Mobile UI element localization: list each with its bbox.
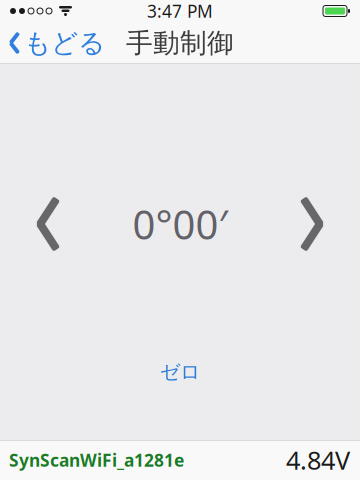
staticText: 4.84V [286,443,350,477]
staticText: ゼロ [160,360,200,384]
staticText: 0°00′ [132,197,227,250]
button[interactable]: もどる [0,22,115,64]
button[interactable]: Decrease [0,176,96,272]
button[interactable]: Increase [264,176,360,272]
staticText: 3:47 PM [147,0,213,22]
staticText: もどる [24,27,105,59]
staticText: SynScanWiFi_a1281e [9,448,184,471]
staticText: 手動制御 [126,27,234,59]
button[interactable]: ゼロ [120,357,240,387]
